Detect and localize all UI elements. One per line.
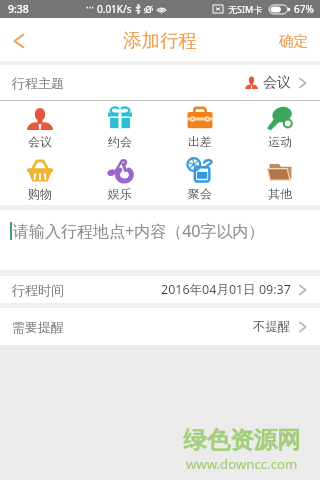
- staticText: 运动: [268, 134, 292, 149]
- staticText: 确定: [279, 32, 308, 50]
- staticText: 购物: [28, 186, 52, 201]
- staticText: 行程主题: [12, 75, 64, 91]
- button[interactable]: 出差: [160, 101, 240, 153]
- button[interactable]: 需要提醒: [0, 308, 320, 345]
- staticText: ···: [86, 0, 95, 14]
- button[interactable]: Back: [0, 18, 36, 61]
- button[interactable]: 运动: [240, 101, 320, 153]
- button[interactable]: 行程主题: [0, 65, 320, 100]
- staticText: 67%: [294, 2, 314, 16]
- staticText: 请输入行程地点+内容（40字以内）: [13, 220, 265, 242]
- staticText: 聚会: [188, 186, 212, 201]
- staticText: www.downcc.com: [186, 455, 298, 473]
- staticText: 绿色资源网: [183, 425, 301, 455]
- staticText: 行程时间: [12, 282, 64, 298]
- staticText: 不提醒: [253, 319, 291, 335]
- staticText: 无SIM卡: [228, 3, 263, 15]
- button[interactable]: 行程时间: [0, 276, 320, 303]
- button[interactable]: 购物: [0, 153, 80, 205]
- button[interactable]: 会议: [0, 101, 80, 153]
- staticText: 会议: [263, 74, 291, 92]
- staticText: 其他: [268, 186, 292, 201]
- staticText: 出差: [188, 134, 212, 149]
- staticText: 2016年04月01日 09:37: [161, 281, 291, 298]
- button[interactable]: 约会: [80, 101, 160, 153]
- staticText: 约会: [108, 134, 132, 149]
- button[interactable]: 确定: [267, 18, 320, 61]
- staticText: 需要提醒: [12, 319, 64, 335]
- staticText: 娱乐: [108, 186, 132, 201]
- button[interactable]: 娱乐: [80, 153, 160, 205]
- staticText: 0.01K/s: [97, 2, 132, 16]
- staticText: 会议: [28, 134, 52, 149]
- button[interactable]: 聚会: [160, 153, 240, 205]
- button[interactable]: 其他: [240, 153, 320, 205]
- staticText: 添加行程: [123, 29, 197, 52]
- staticText: 9:38: [8, 2, 29, 16]
